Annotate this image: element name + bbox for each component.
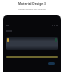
button[interactable]: Action <box>48 62 55 65</box>
button[interactable] <box>6 56 58 58</box>
staticText: Material Design 3 <box>18 2 46 6</box>
staticText: Design system for Android <box>18 8 46 11</box>
button[interactable] <box>6 37 58 50</box>
